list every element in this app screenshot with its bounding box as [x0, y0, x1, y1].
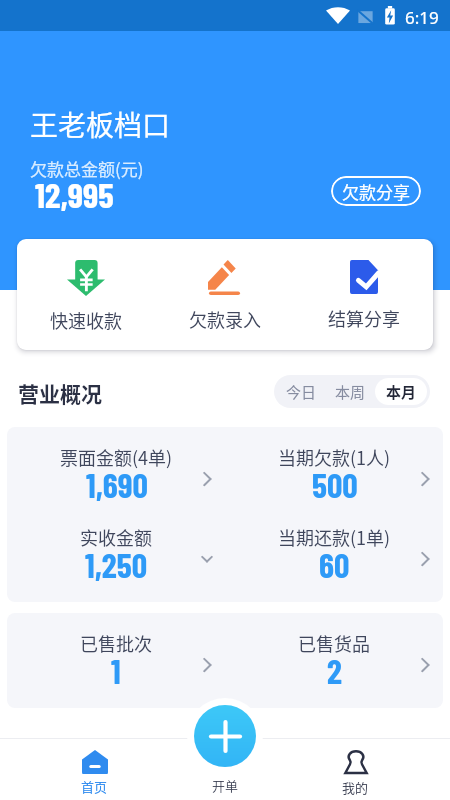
staticText: 快速收款: [50, 307, 122, 333]
button[interactable]: 结算分享: [294, 239, 433, 350]
staticText: 12,995: [35, 173, 114, 215]
button[interactable]: 本周: [326, 378, 375, 405]
staticText: 首页: [81, 777, 108, 796]
button[interactable]: 票面金额(4单): [7, 433, 225, 509]
button[interactable]: 本月: [375, 378, 427, 405]
button[interactable]: 我的: [325, 750, 386, 797]
button[interactable]: 当期还款(1单): [225, 513, 443, 589]
staticText: 当期还款(1单): [278, 524, 391, 550]
button[interactable]: 快速收款: [17, 239, 155, 350]
button[interactable]: 今日: [277, 378, 326, 405]
staticText: 2: [327, 650, 342, 691]
staticText: 我的: [342, 778, 369, 797]
staticText: 欠款录入: [189, 306, 261, 332]
staticText: 欠款总金额(元): [30, 156, 144, 181]
button[interactable]: 已售货品: [225, 619, 443, 695]
staticText: 王老板档口: [30, 104, 171, 145]
staticText: 实收金额: [80, 524, 152, 550]
button[interactable]: 首页: [64, 750, 125, 796]
staticText: 1,690: [86, 464, 148, 505]
button[interactable]: 欠款分享: [331, 176, 421, 206]
staticText: 当期欠款(1人): [278, 444, 391, 470]
staticText: 500: [312, 464, 358, 505]
staticText: 结算分享: [328, 305, 400, 331]
staticText: 60: [319, 544, 350, 585]
button[interactable]: 实收金额: [7, 513, 225, 589]
button[interactable]: 开单: [194, 705, 256, 767]
staticText: 已售货品: [298, 630, 370, 656]
staticText: 欠款分享: [342, 179, 410, 204]
staticText: 1: [111, 650, 121, 691]
staticText: 票面金额(4单): [60, 444, 173, 470]
staticText: 本月: [386, 381, 417, 403]
button[interactable]: 当期欠款(1人): [225, 433, 443, 509]
staticText: 今日: [286, 381, 317, 403]
staticText: 开单: [212, 776, 239, 795]
staticText: 营业概况: [18, 378, 102, 408]
staticText: 6:19: [405, 6, 439, 29]
other: 我的: [343, 750, 369, 775]
staticText: 本周: [335, 381, 366, 403]
button[interactable]: 已售批次: [7, 619, 225, 695]
other: 首页: [82, 750, 108, 774]
staticText: 已售批次: [80, 630, 152, 656]
staticText: 1,250: [85, 544, 148, 585]
button[interactable]: 欠款录入: [155, 239, 294, 350]
